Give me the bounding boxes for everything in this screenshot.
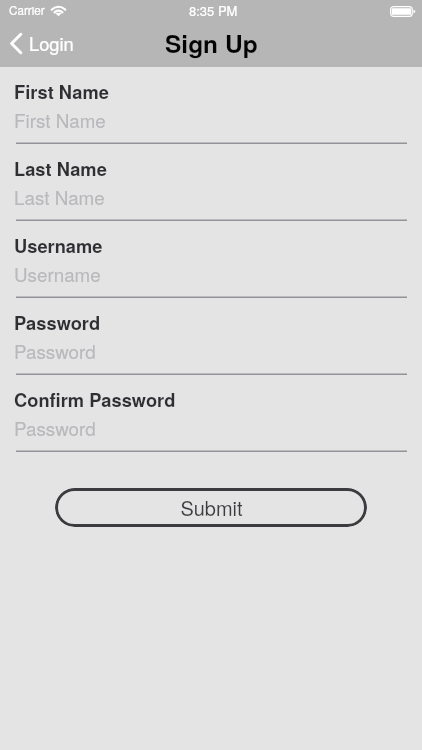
button[interactable]: First Name: [0, 79, 422, 156]
staticText: Password: [14, 414, 96, 441]
staticText: Carrier: [9, 2, 45, 19]
staticText: Username: [14, 260, 101, 287]
staticText: Sign Up: [165, 25, 258, 60]
staticText: Submit: [180, 493, 243, 522]
button[interactable]: Submit: [55, 488, 367, 527]
staticText: First Name: [14, 106, 106, 133]
staticText: Login: [29, 30, 74, 56]
staticText: 8:35 PM: [189, 1, 238, 20]
button[interactable]: Password: [0, 310, 422, 387]
staticText: First Name: [14, 78, 109, 104]
staticText: Password: [14, 309, 101, 335]
staticText: Confirm Password: [14, 386, 176, 412]
staticText: Last Name: [14, 183, 105, 210]
staticText: Password: [14, 337, 96, 364]
button[interactable]: Confirm Password: [0, 387, 422, 464]
button[interactable]: Last Name: [0, 156, 422, 233]
other: Battery full: [390, 6, 416, 17]
staticText: Last Name: [14, 155, 107, 181]
button[interactable]: Login: [0, 26, 88, 64]
staticText: Username: [14, 232, 103, 258]
button[interactable]: Username: [0, 233, 422, 310]
